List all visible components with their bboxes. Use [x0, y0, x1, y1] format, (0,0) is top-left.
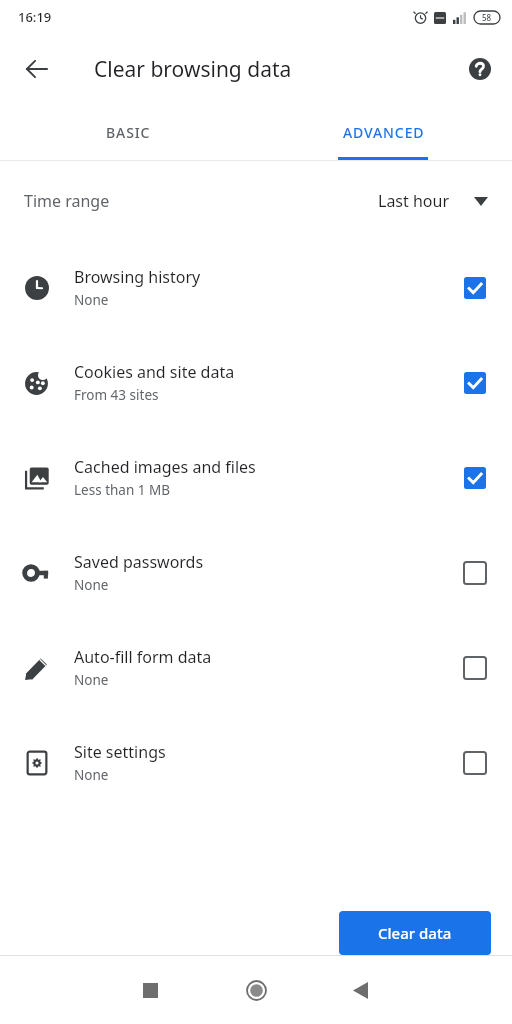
staticText: Less than 1 MB [74, 481, 171, 499]
staticText: Site settings [74, 741, 166, 763]
staticText: Last hour [378, 190, 450, 212]
staticText: None [74, 576, 109, 594]
staticText: None [74, 766, 109, 784]
button[interactable]: Time range [0, 161, 512, 240]
staticText: Clear browsing data [94, 55, 292, 84]
staticText: 58 [482, 12, 492, 23]
button[interactable]: BASIC [0, 104, 256, 160]
button[interactable]: Browsing history [0, 240, 512, 335]
staticText: Auto-fill form data [74, 646, 212, 668]
button[interactable]: Cached images and files [0, 430, 512, 525]
button[interactable]: Back [336, 966, 384, 1014]
button[interactable]: Auto-fill form data [0, 620, 512, 715]
staticText: None [74, 291, 109, 309]
button[interactable]: Help [458, 47, 502, 91]
button[interactable]: Back [13, 45, 61, 93]
staticText: BASIC [106, 123, 151, 142]
staticText: 16:19 [18, 8, 52, 26]
button[interactable]: Clear data [339, 911, 491, 955]
staticText: Saved passwords [74, 551, 204, 573]
button[interactable]: Home [232, 966, 280, 1014]
button[interactable]: Site settings [0, 715, 512, 810]
staticText: ADVANCED [343, 123, 425, 142]
staticText: Cached images and files [74, 456, 256, 478]
button[interactable]: Saved passwords [0, 525, 512, 620]
staticText: Time range [24, 190, 110, 212]
staticText: Cookies and site data [74, 361, 235, 383]
staticText: Browsing history [74, 266, 201, 288]
staticText: None [74, 671, 109, 689]
staticText: From 43 sites [74, 386, 159, 404]
button[interactable]: Cookies and site data [0, 335, 512, 430]
staticText: Clear data [378, 923, 452, 943]
button[interactable]: ADVANCED [256, 104, 512, 160]
button[interactable]: Recent apps [126, 966, 174, 1014]
